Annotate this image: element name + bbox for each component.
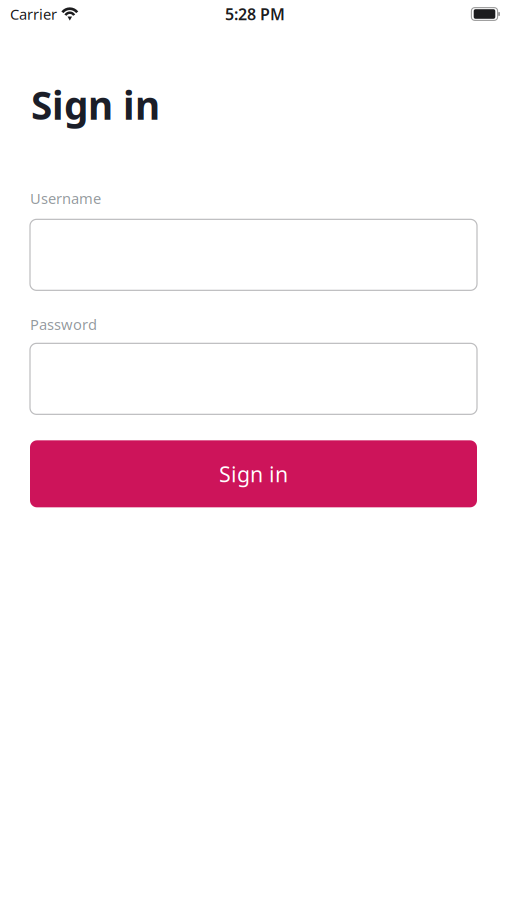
staticText: Password: [30, 315, 97, 334]
staticText: Sign in: [31, 79, 160, 130]
staticText: Carrier: [10, 4, 57, 24]
button[interactable]: Username: [30, 219, 477, 290]
staticText: 5:28 PM: [225, 3, 285, 25]
staticText: Username: [30, 189, 101, 208]
button[interactable]: Sign in: [30, 440, 477, 507]
staticText: Sign in: [219, 460, 288, 488]
button[interactable]: Password: [30, 343, 477, 414]
